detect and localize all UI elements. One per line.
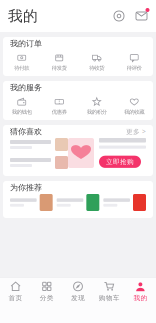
button[interactable]: [10, 156, 68, 169]
button[interactable]: 待收货: [78, 50, 115, 74]
button[interactable]: 发现: [62, 278, 94, 305]
button[interactable]: 立即抢购: [99, 156, 141, 168]
button[interactable]: 我的收藏: [115, 94, 153, 118]
button[interactable]: [57, 194, 99, 211]
button[interactable]: 购物车: [94, 278, 125, 305]
button[interactable]: 待付款: [3, 50, 40, 74]
button[interactable]: 更多 >: [126, 127, 146, 136]
staticText: 我的积分: [87, 109, 107, 115]
staticText: 我的钱包: [12, 109, 32, 115]
button[interactable]: [10, 138, 68, 151]
button[interactable]: 我的钱包: [3, 94, 40, 118]
button[interactable]: 我的积分: [78, 94, 115, 118]
staticText: 立即抢购: [106, 158, 134, 166]
staticText: 为你推荐: [10, 183, 42, 192]
staticText: 我的: [133, 294, 147, 302]
staticText: 发现: [71, 294, 85, 302]
staticText: 我的订单: [10, 39, 42, 48]
button[interactable]: 待评价: [115, 50, 153, 74]
staticText: 我的服务: [10, 83, 42, 92]
staticText: 我的: [8, 7, 38, 25]
staticText: 优惠券: [52, 109, 67, 115]
staticText: 首页: [9, 294, 23, 302]
button[interactable]: [10, 194, 53, 211]
staticText: 待付款: [14, 65, 29, 71]
staticText: 待收货: [89, 65, 104, 71]
staticText: 分类: [40, 294, 54, 302]
button[interactable]: Settings: [112, 9, 126, 23]
staticText: 待发货: [52, 65, 67, 71]
button[interactable]: 分类: [31, 278, 62, 305]
staticText: 更多 >: [126, 127, 146, 136]
button[interactable]: 优惠券: [40, 94, 78, 118]
button[interactable]: 待发货: [40, 50, 78, 74]
button[interactable]: 我的: [125, 278, 156, 305]
button[interactable]: Messages: [134, 8, 149, 23]
staticText: 待评价: [127, 65, 142, 71]
staticText: 猜你喜欢: [10, 127, 42, 136]
staticText: 购物车: [99, 294, 120, 302]
button[interactable]: 首页: [0, 278, 31, 305]
staticText: 我的收藏: [124, 109, 144, 115]
button[interactable]: [103, 194, 146, 211]
